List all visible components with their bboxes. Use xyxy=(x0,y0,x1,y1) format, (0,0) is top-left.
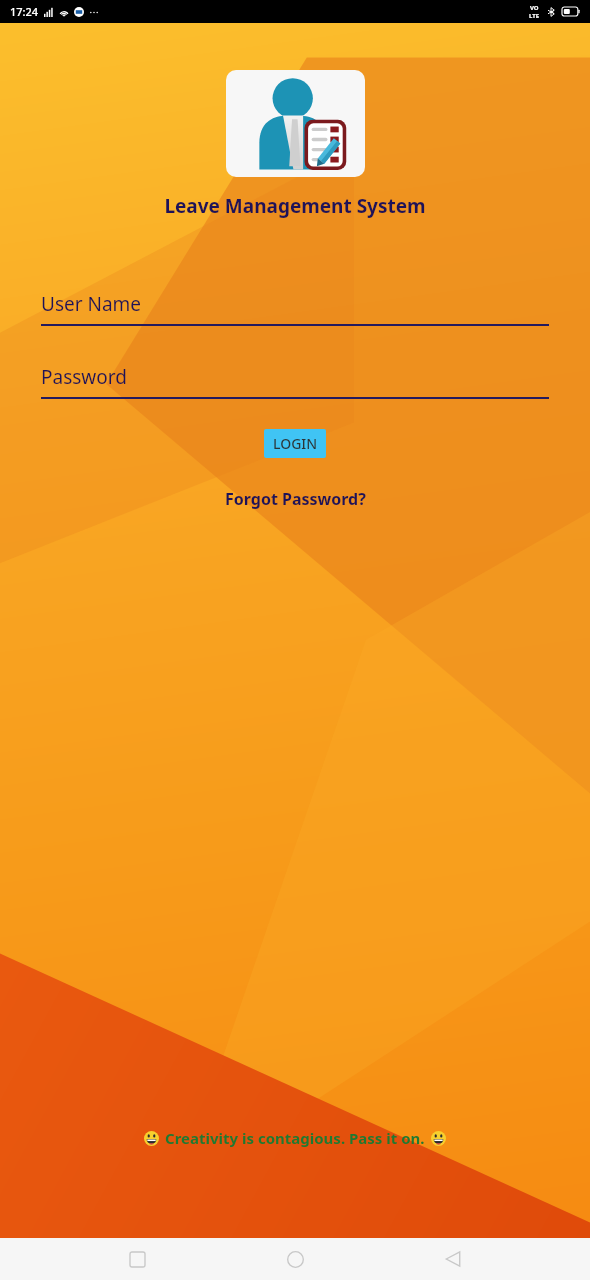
button[interactable]: Password xyxy=(41,364,549,397)
button[interactable]: Recents xyxy=(116,1238,158,1280)
button[interactable]: Back xyxy=(432,1238,474,1280)
staticText: Forgot Password? xyxy=(225,488,366,510)
staticText: Leave Management System xyxy=(164,193,426,219)
staticText: 17:24 xyxy=(10,4,39,19)
button[interactable]: Home xyxy=(274,1238,316,1280)
button[interactable]: LOGIN xyxy=(264,429,326,458)
staticText: User Name xyxy=(41,291,142,317)
staticText: LOGIN xyxy=(273,434,318,453)
staticText: LTE xyxy=(529,12,540,20)
button[interactable]: User Name xyxy=(41,291,549,324)
staticText: Creativity is contagious. Pass it on. xyxy=(165,1128,425,1148)
button[interactable]: Forgot Password? xyxy=(217,484,374,514)
staticText: Password xyxy=(41,364,127,390)
staticText: VO xyxy=(530,4,539,12)
button[interactable]: App logo xyxy=(226,70,365,177)
